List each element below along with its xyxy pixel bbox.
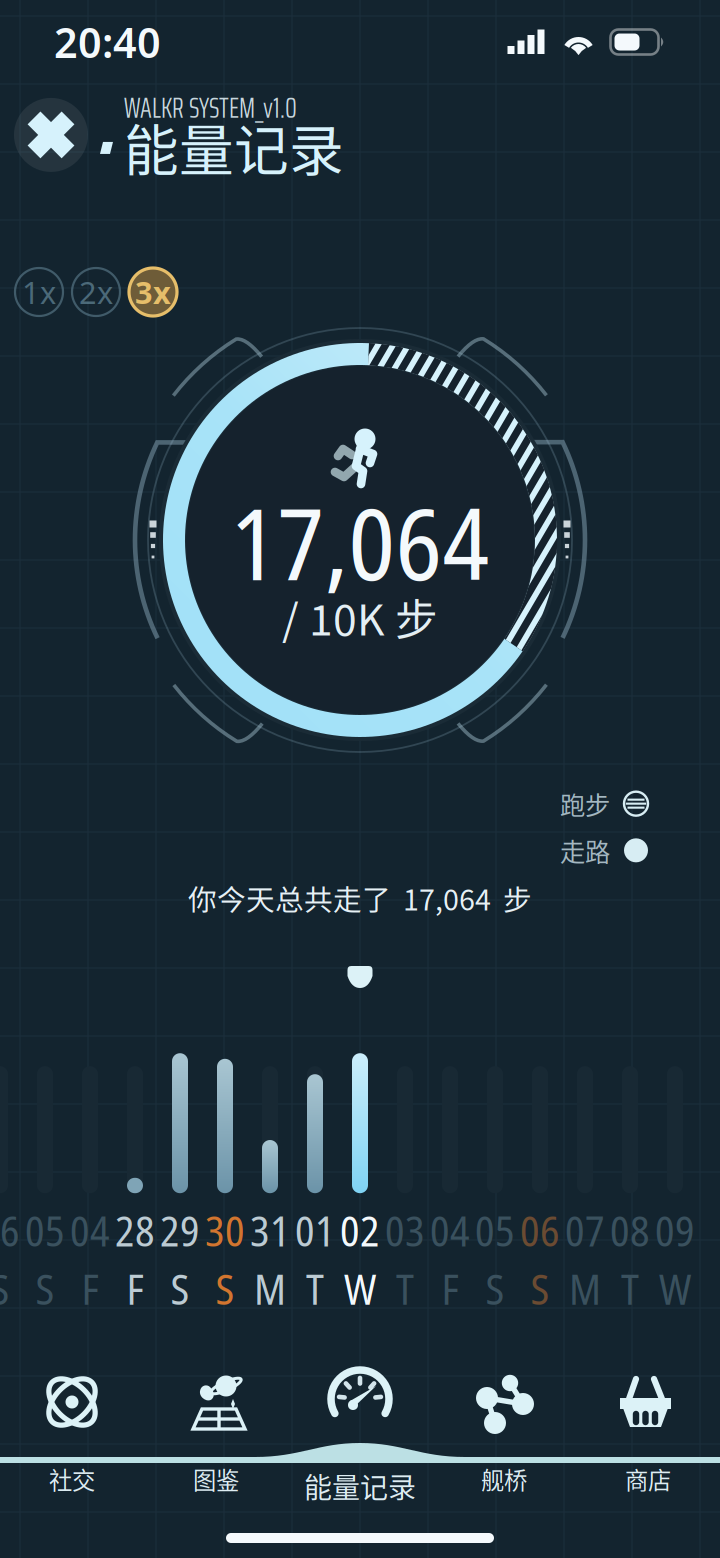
staticText: 02 [340, 1202, 380, 1258]
staticText: M [569, 1260, 601, 1317]
staticText: T [396, 1260, 414, 1317]
staticText: S [530, 1260, 549, 1317]
staticText: 商店 [625, 1462, 671, 1496]
staticText: 30 [205, 1202, 245, 1258]
staticText: 06 [0, 1202, 20, 1258]
button[interactable]: 3x [129, 268, 177, 316]
staticText: 能量记录 [124, 107, 344, 186]
staticText: 图鉴 [193, 1462, 239, 1496]
staticText: 06 [520, 1202, 560, 1258]
staticText: 08 [610, 1202, 650, 1258]
staticText: S [215, 1260, 234, 1317]
staticText: W [344, 1260, 376, 1317]
staticText: 跑步 [560, 785, 610, 822]
staticText: 能量记录 [304, 1466, 416, 1506]
staticText: / 10K 步 [282, 586, 438, 648]
staticText: 31 [250, 1202, 290, 1258]
staticText: W [659, 1260, 691, 1317]
staticText: 舰桥 [481, 1462, 527, 1496]
staticText: 09 [655, 1202, 695, 1258]
staticText: 29 [160, 1202, 200, 1258]
button[interactable]: 图鉴 [144, 1340, 288, 1510]
staticText: 04 [430, 1202, 470, 1258]
staticText: 2x [79, 272, 113, 312]
staticText: 05 [475, 1202, 515, 1258]
staticText: T [621, 1260, 639, 1317]
button[interactable]: 1x [15, 268, 63, 316]
staticText: S [485, 1260, 504, 1317]
staticText: F [126, 1260, 143, 1317]
staticText: F [81, 1260, 98, 1317]
button[interactable]: 商店 [576, 1340, 720, 1510]
button[interactable]: 2x [72, 268, 120, 316]
staticText: 1x [22, 272, 56, 312]
staticText: F [441, 1260, 458, 1317]
staticText: 04 [70, 1202, 110, 1258]
staticText: 社交 [49, 1462, 95, 1496]
staticText: T [306, 1260, 324, 1317]
staticText: 17,064 [230, 475, 489, 609]
staticText: WALKR SYSTEM_v1.0 [124, 86, 297, 130]
staticText: 28 [115, 1202, 155, 1258]
staticText: 01 [295, 1202, 335, 1258]
button[interactable]: 社交 [0, 1340, 144, 1510]
staticText: M [254, 1260, 286, 1317]
staticText: 07 [565, 1202, 605, 1258]
staticText: 你今天总共走了 17,064 步 [188, 877, 532, 919]
button[interactable]: Close [14, 98, 88, 172]
staticText: S [35, 1260, 54, 1317]
staticText: 03 [385, 1202, 425, 1258]
staticText: 走路 [560, 832, 610, 869]
button[interactable]: 舰桥 [432, 1340, 576, 1510]
staticText: 05 [25, 1202, 65, 1258]
staticText: 3x [135, 272, 171, 312]
staticText: S [0, 1260, 9, 1317]
button[interactable]: 能量记录 [288, 1340, 432, 1510]
staticText: 20:40 [54, 15, 161, 69]
staticText: S [170, 1260, 189, 1317]
